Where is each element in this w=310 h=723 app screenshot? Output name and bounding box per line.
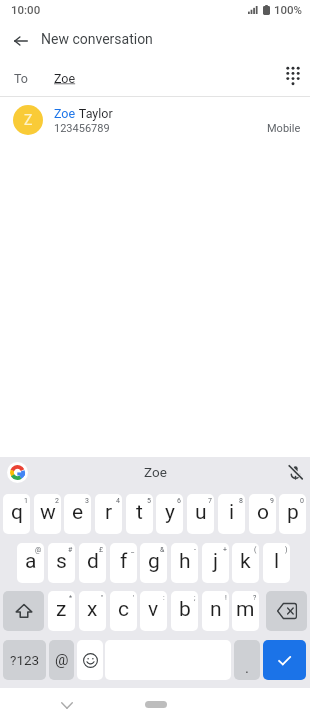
staticText: £: [99, 546, 104, 554]
staticText: Zoe: [54, 106, 76, 121]
button[interactable]: j: [202, 543, 229, 583]
staticText: 100%: [274, 3, 303, 16]
staticText: 2: [55, 497, 59, 505]
staticText: p: [287, 500, 299, 525]
staticText: l: [274, 549, 280, 574]
staticText: f: [120, 549, 128, 574]
staticText: u: [195, 500, 207, 525]
button[interactable]: m: [232, 591, 259, 631]
button[interactable]: s: [48, 543, 75, 583]
staticText: a: [25, 549, 37, 574]
button[interactable]: ?123: [3, 640, 46, 680]
button[interactable]: i: [218, 494, 245, 534]
staticText: #: [68, 546, 73, 554]
button[interactable]: @: [49, 640, 74, 680]
staticText: ": [101, 594, 104, 602]
button[interactable]: d: [79, 543, 106, 583]
staticText: 4: [116, 497, 120, 505]
button[interactable]: q: [3, 494, 30, 534]
staticText: ): [285, 546, 288, 554]
button[interactable]: b: [171, 591, 198, 631]
staticText: b: [179, 597, 191, 622]
button[interactable]: w: [34, 494, 61, 534]
button[interactable]: t: [126, 494, 153, 534]
button[interactable]: e: [64, 494, 91, 534]
button[interactable]: x: [79, 591, 106, 631]
staticText: Mobile: [267, 122, 301, 135]
staticText: ': [133, 594, 135, 602]
staticText: r: [105, 500, 113, 525]
staticText: x: [87, 597, 98, 622]
staticText: 6: [177, 497, 181, 505]
button[interactable]: n: [202, 591, 229, 631]
button[interactable]: o: [249, 494, 276, 534]
staticText: k: [240, 549, 251, 574]
staticText: w: [40, 500, 56, 525]
staticText: !: [225, 594, 227, 602]
staticText: i: [229, 500, 235, 525]
button[interactable]: g: [140, 543, 167, 583]
staticText: c: [118, 597, 129, 622]
staticText: 8: [239, 497, 243, 505]
staticText: Zoe: [54, 71, 76, 86]
button[interactable]: c: [110, 591, 137, 631]
staticText: e: [72, 500, 84, 525]
staticText: ;: [194, 594, 196, 602]
staticText: @: [35, 546, 42, 554]
staticText: *: [69, 594, 73, 602]
staticText: To: [14, 71, 28, 86]
staticText: 123456789: [54, 122, 110, 135]
staticText: 7: [208, 497, 212, 505]
button[interactable]: Back: [8, 28, 34, 54]
button[interactable]: Hide keyboard: [55, 693, 79, 717]
staticText: Z: [24, 112, 33, 128]
staticText: s: [56, 549, 67, 574]
button[interactable]: Emoji: [77, 640, 103, 680]
button[interactable]: Enter: [263, 640, 306, 680]
staticText: h: [179, 549, 191, 574]
button[interactable]: p: [279, 494, 306, 534]
button[interactable]: h: [171, 543, 198, 583]
staticText: m: [236, 597, 255, 622]
staticText: o: [257, 500, 269, 525]
staticText: +: [223, 546, 227, 554]
button[interactable]: y: [156, 494, 183, 534]
button[interactable]: .: [234, 640, 260, 680]
staticText: y: [165, 500, 175, 525]
button[interactable]: l: [263, 543, 290, 583]
staticText: -: [194, 546, 196, 554]
staticText: t: [136, 500, 143, 525]
staticText: g: [148, 549, 160, 574]
button[interactable]: k: [232, 543, 259, 583]
staticText: d: [87, 549, 99, 574]
button[interactable]: r: [95, 494, 122, 534]
button[interactable]: Voice input disabled: [284, 461, 306, 483]
button[interactable]: Shift: [3, 591, 44, 631]
button[interactable]: a: [17, 543, 44, 583]
staticText: n: [210, 597, 222, 622]
staticText: 5: [147, 497, 151, 505]
button[interactable]: f: [110, 543, 137, 583]
button[interactable]: Z: [0, 97, 310, 143]
staticText: 10:00: [11, 3, 41, 16]
staticText: &: [160, 546, 165, 554]
staticText: 9: [270, 497, 274, 505]
staticText: Zoe: [144, 464, 167, 480]
staticText: 0: [300, 497, 304, 505]
button[interactable]: Backspace: [266, 591, 307, 631]
button[interactable]: Google Assistant: [7, 462, 28, 483]
button[interactable]: z: [48, 591, 75, 631]
staticText: ?123: [10, 652, 40, 668]
staticText: ?: [253, 594, 257, 602]
staticText: (: [254, 546, 257, 554]
button[interactable]: v: [140, 591, 167, 631]
staticText: 1: [24, 497, 28, 505]
staticText: @: [55, 651, 69, 669]
staticText: q: [11, 500, 23, 525]
button[interactable]: Dialpad: [280, 63, 306, 89]
staticText: z: [56, 597, 67, 622]
button[interactable]: u: [187, 494, 214, 534]
staticText: v: [148, 597, 159, 622]
staticText: _: [131, 546, 135, 554]
